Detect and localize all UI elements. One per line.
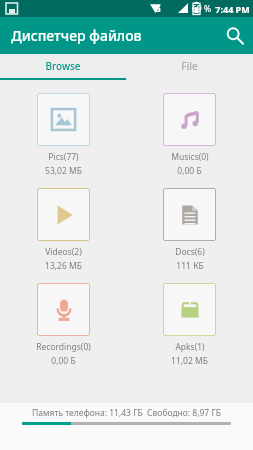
button[interactable]: File xyxy=(126,54,253,78)
staticText: 7:44 PM xyxy=(215,3,250,15)
staticText: 13,26 МБ xyxy=(45,260,82,272)
staticText: Recordings(0) xyxy=(36,341,91,353)
staticText: 111 КБ xyxy=(176,260,204,272)
staticText: G xyxy=(154,2,161,15)
staticText: 0,00 Б xyxy=(51,355,76,367)
staticText: File xyxy=(181,59,198,73)
button[interactable]: Apks(1) xyxy=(126,283,253,367)
staticText: Pics(77) xyxy=(48,151,79,163)
button[interactable]: Videos(2) xyxy=(0,188,126,272)
button[interactable]: Browse xyxy=(0,54,126,78)
staticText: Apks(1) xyxy=(175,341,205,353)
staticText: 53,02 МБ xyxy=(45,165,82,177)
staticText: 0,00 Б xyxy=(177,165,202,177)
staticText: Musics(0) xyxy=(171,151,209,163)
staticText: Docs(6) xyxy=(175,246,205,258)
button[interactable]: Search xyxy=(216,17,253,54)
staticText: Память телефона: 11,43 ГБ Свободно: 8,97… xyxy=(32,407,221,419)
staticText: Videos(2) xyxy=(45,246,82,258)
staticText: 69 % xyxy=(192,3,211,15)
staticText: 11,02 МБ xyxy=(171,355,208,367)
button[interactable]: Recordings(0) xyxy=(0,283,126,367)
staticText: Диспетчер файлов xyxy=(11,26,142,45)
button[interactable]: Pics(77) xyxy=(0,93,126,177)
button[interactable]: Musics(0) xyxy=(126,93,253,177)
button[interactable]: Docs(6) xyxy=(126,188,253,272)
staticText: Browse xyxy=(45,59,81,73)
